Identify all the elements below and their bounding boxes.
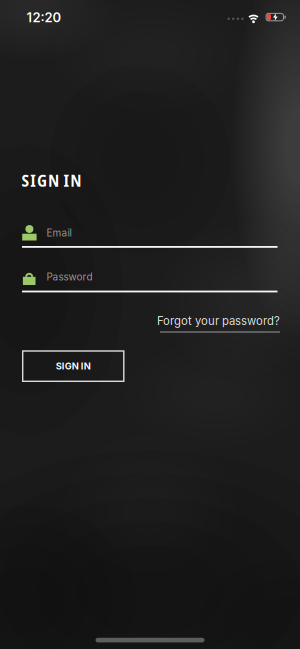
staticText: 12:20	[26, 9, 61, 25]
staticText: Forgot your password?	[157, 314, 280, 328]
staticText: Password	[46, 271, 92, 283]
staticText: Email	[46, 227, 71, 239]
staticText: SIGN IN	[21, 169, 81, 191]
button[interactable]: Email	[22, 224, 277, 248]
button[interactable]: Forgot your password?	[148, 314, 280, 333]
button[interactable]: Password	[22, 269, 277, 293]
button[interactable]: SIGN IN	[22, 350, 124, 382]
staticText: SIGN IN	[56, 360, 91, 372]
